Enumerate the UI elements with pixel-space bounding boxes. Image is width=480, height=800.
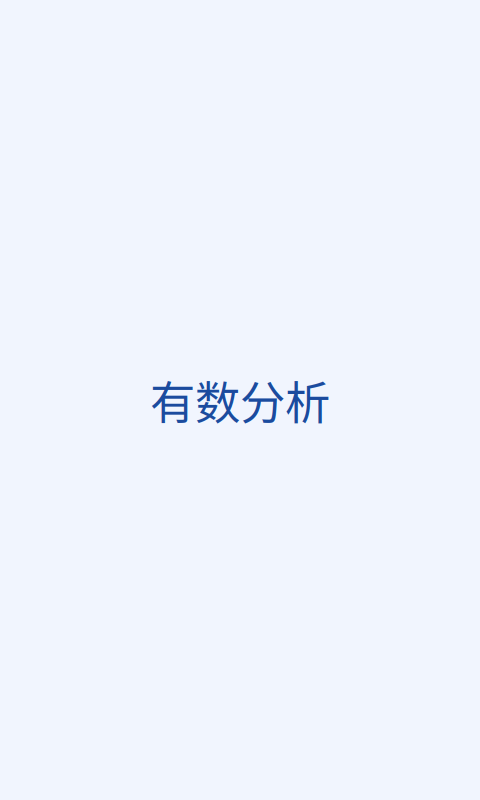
staticText: 有数分析: [150, 367, 330, 433]
